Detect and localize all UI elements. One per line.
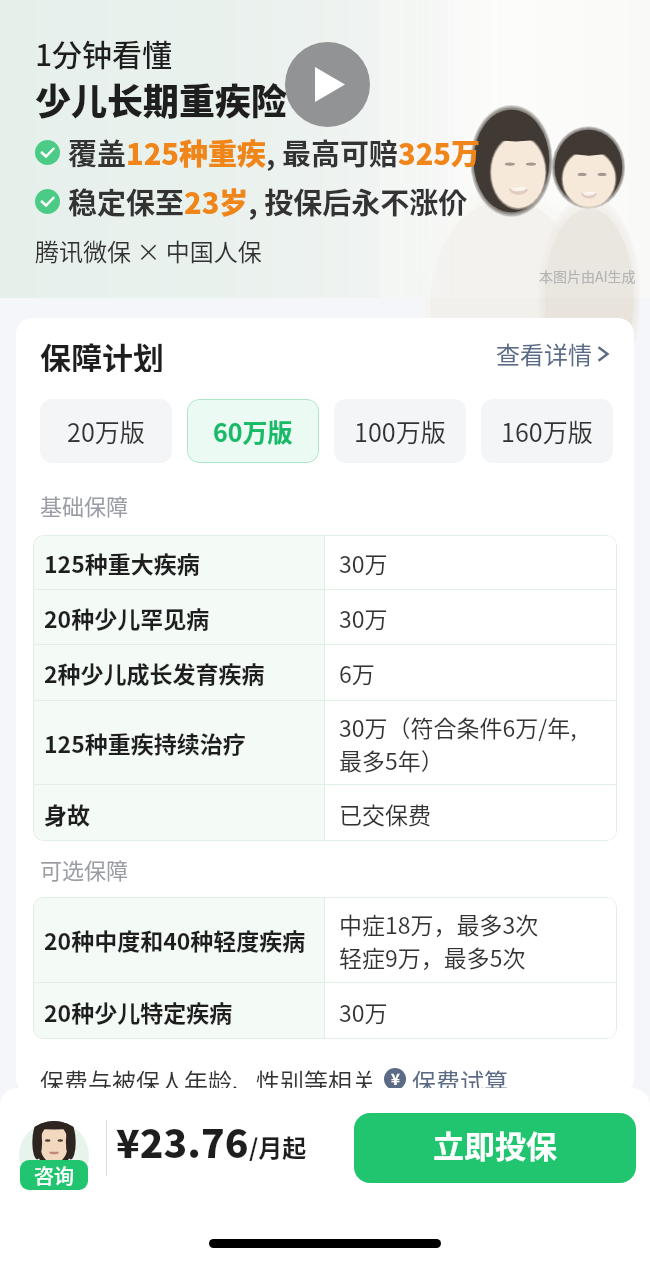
button[interactable]: 100万版	[334, 399, 466, 463]
button[interactable]: 查看详情	[496, 336, 611, 371]
staticText: 30万	[339, 995, 388, 1028]
staticText: ¥	[391, 1068, 400, 1090]
staticText: 可选保障	[40, 853, 129, 885]
staticText: 已交保费	[339, 797, 431, 830]
button[interactable]: 20万版	[40, 399, 172, 463]
staticText: 100万版	[354, 413, 446, 449]
staticText: 20种中度和40种轻度疾病	[44, 923, 306, 956]
staticText: 160万版	[501, 413, 593, 449]
staticText: 125种重大疾病	[44, 546, 200, 579]
staticText: 中症18万，最多3次	[339, 907, 539, 940]
staticText: 2种少儿成长发育疾病	[44, 656, 265, 689]
staticText: 身故	[44, 797, 90, 830]
staticText: 立即投保	[433, 1122, 557, 1167]
staticText: 1分钟看懂	[35, 31, 173, 74]
staticText: 30万	[339, 601, 388, 634]
staticText: 最多5年）	[339, 743, 444, 776]
staticText: 保障计划	[40, 334, 164, 372]
staticText: 稳定保至23岁, 投保后永不涨价	[68, 180, 468, 222]
staticText: 本图片由AI生成	[539, 266, 636, 286]
staticText: 20种少儿特定疾病	[44, 995, 233, 1028]
staticText: ¥23.76	[116, 1113, 249, 1169]
staticText: 咨询	[34, 1161, 74, 1190]
staticText: 125种重疾持续治疗	[44, 726, 246, 759]
staticText: 腾讯微保 × 中国人保	[35, 233, 262, 268]
staticText: 60万版	[213, 413, 293, 449]
button[interactable]: 立即投保	[354, 1113, 636, 1183]
staticText: 基础保障	[40, 489, 129, 521]
staticText: 6万	[339, 656, 375, 689]
staticText: 20万版	[67, 413, 145, 449]
button[interactable]: Play video	[285, 42, 370, 127]
button[interactable]: 160万版	[481, 399, 613, 463]
staticText: 30万	[339, 546, 388, 579]
staticText: 覆盖125种重疾, 最高可赔325万	[68, 131, 480, 173]
staticText: 少儿长期重疾险	[35, 73, 288, 125]
staticText: 保费试算	[412, 1063, 508, 1094]
staticText: 保费与被保人年龄、性别等相关	[40, 1063, 376, 1094]
staticText: 轻症9万，最多5次	[339, 940, 526, 973]
button[interactable]: ¥	[384, 1063, 508, 1094]
staticText: /月起	[249, 1129, 307, 1164]
staticText: 20种少儿罕见病	[44, 601, 210, 634]
button[interactable]: Consult advisor	[19, 1113, 89, 1190]
staticText: 查看详情	[496, 336, 592, 371]
staticText: 30万（符合条件6万/年,	[339, 710, 577, 743]
button[interactable]: 60万版	[187, 399, 319, 463]
